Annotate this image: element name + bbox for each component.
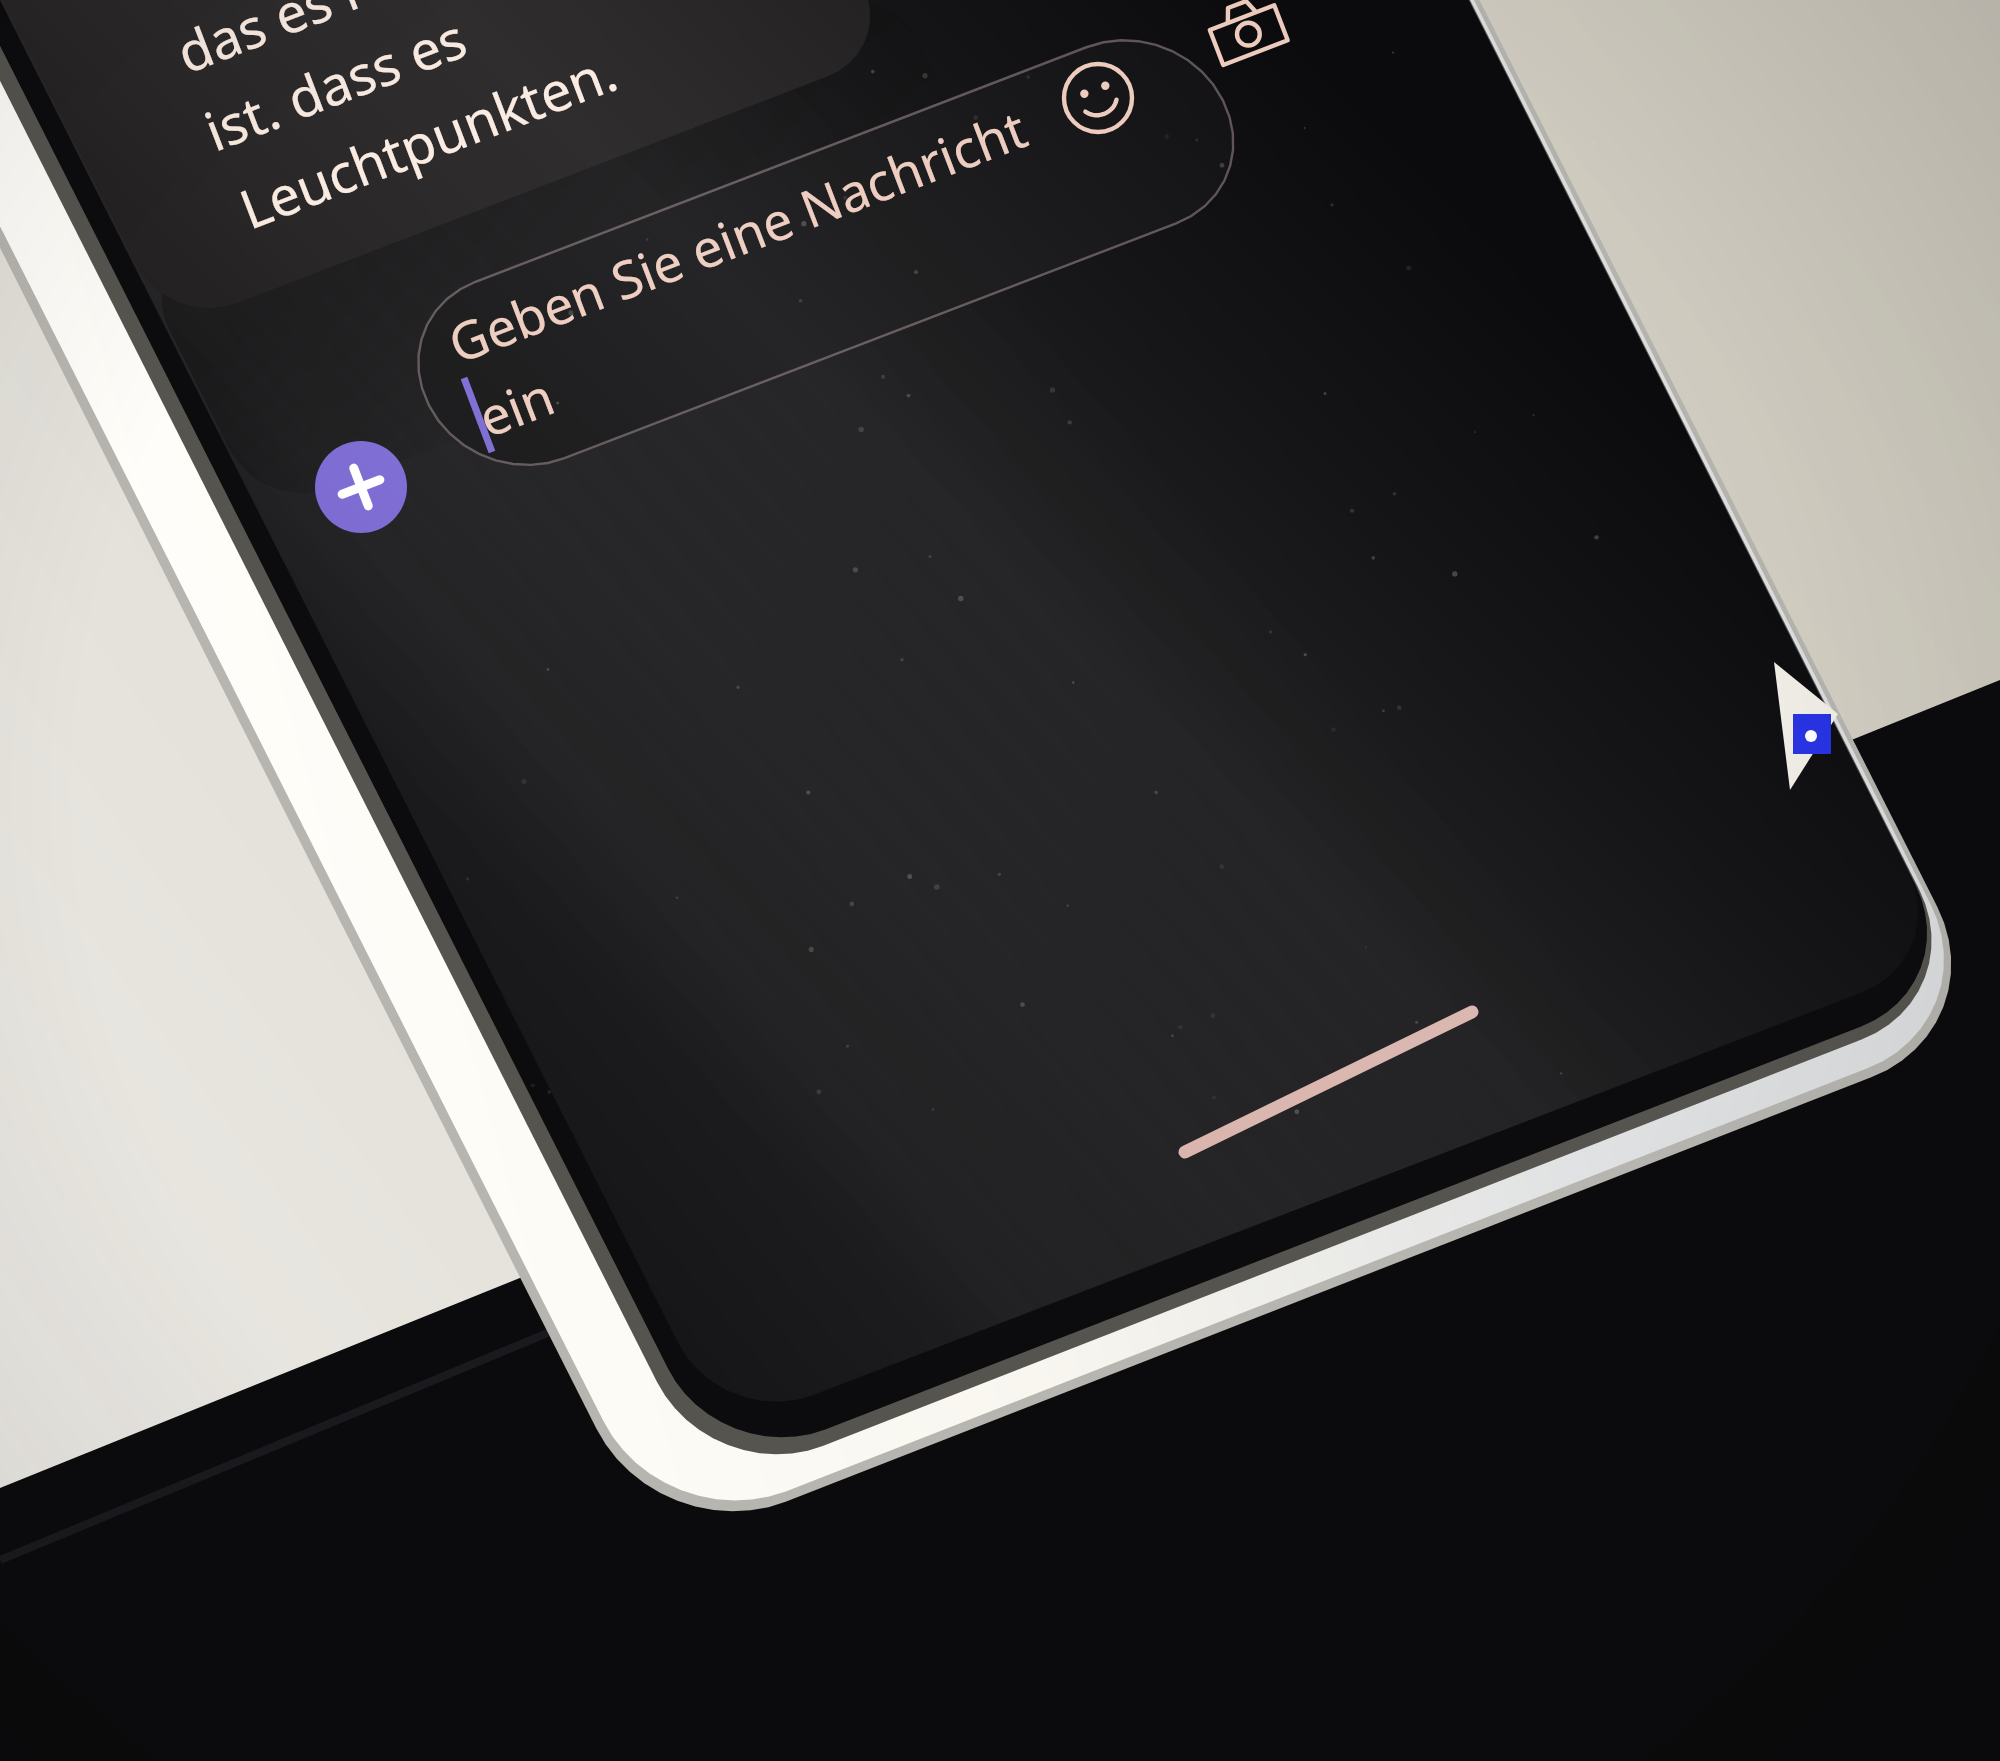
button[interactable]: Insert emoji bbox=[1058, 58, 1138, 138]
button[interactable]: Take photo bbox=[1204, 0, 1286, 72]
button[interactable]: Add attachment bbox=[315, 441, 407, 533]
button[interactable]: Message input field, Geben Sie eine Nach… bbox=[430, 40, 1230, 460]
button[interactable]: Received message: das es ist. dass es Le… bbox=[120, 0, 680, 290]
